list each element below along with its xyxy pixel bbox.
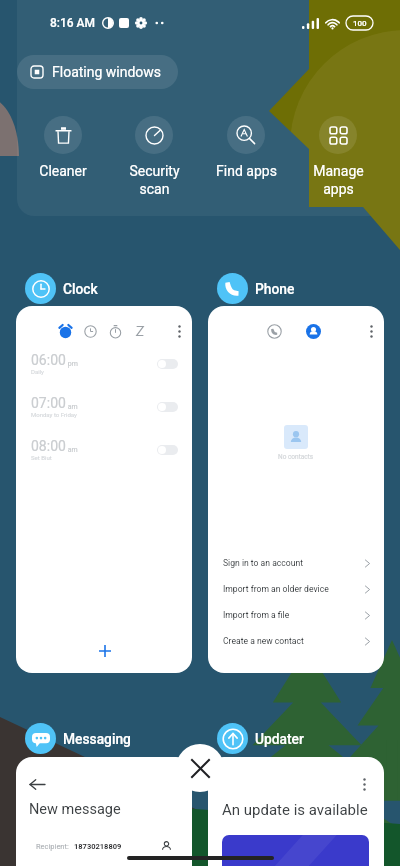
button[interactable]: An update is available: [208, 757, 384, 866]
button[interactable]: Sign in to an account: [208, 550, 384, 576]
button[interactable]: Cleaner: [17, 116, 108, 179]
staticText: Phone: [255, 281, 295, 297]
staticText: Messaging: [63, 731, 131, 747]
staticText: Sign in to an account: [223, 558, 304, 568]
button[interactable]: Security scan: [108, 116, 200, 197]
button[interactable]: Messaging: [16, 719, 141, 758]
staticText: Cleaner: [39, 163, 87, 179]
button[interactable]: 07:00: [16, 385, 192, 428]
staticText: 06:00: [31, 352, 66, 368]
button[interactable]: Add alarm: [98, 644, 111, 657]
staticText: pm: [66, 360, 78, 368]
staticText: Floating windows: [52, 64, 162, 80]
staticText: Import from an older device: [223, 584, 329, 594]
staticText: 18730218809: [74, 842, 122, 851]
button[interactable]: Clock: [16, 269, 108, 308]
staticText: Import from a file: [223, 610, 290, 620]
staticText: An update is available: [222, 801, 368, 819]
button[interactable]: New message: [16, 757, 192, 866]
staticText: Security scan: [129, 163, 180, 197]
staticText: am: [66, 446, 78, 454]
button[interactable]: 08:00: [16, 428, 192, 471]
staticText: Create a new contact: [223, 636, 304, 646]
staticText: Monday to Friday: [31, 411, 77, 418]
staticText: Find apps: [216, 163, 277, 179]
button[interactable]: Import from an older device: [208, 576, 384, 602]
staticText: Clock: [63, 281, 98, 297]
button[interactable]: Updater: [208, 719, 314, 758]
button[interactable]: Manage apps: [292, 116, 384, 197]
button[interactable]: Find apps: [200, 116, 292, 179]
button[interactable]: Close all: [176, 744, 224, 792]
staticText: Set Biut: [31, 454, 52, 461]
staticText: Updater: [255, 731, 304, 747]
button[interactable]: Import from a file: [208, 602, 384, 628]
staticText: Daily: [31, 368, 44, 375]
button[interactable]: 06:00: [16, 306, 192, 673]
button[interactable]: No contacts: [208, 306, 384, 673]
button[interactable]: Create a new contact: [208, 628, 384, 654]
staticText: 08:00: [31, 438, 66, 454]
staticText: 07:00: [31, 395, 66, 411]
button[interactable]: Phone: [208, 269, 305, 308]
staticText: Manage apps: [313, 163, 364, 197]
staticText: Recipient:: [36, 842, 69, 851]
staticText: No contacts: [278, 453, 314, 461]
staticText: 8:16 AM: [50, 16, 96, 30]
button[interactable]: 06:00: [16, 342, 192, 385]
staticText: am: [66, 403, 78, 411]
staticText: 100: [353, 19, 367, 28]
staticText: New message: [29, 801, 121, 818]
button[interactable]: Floating windows: [17, 55, 178, 89]
